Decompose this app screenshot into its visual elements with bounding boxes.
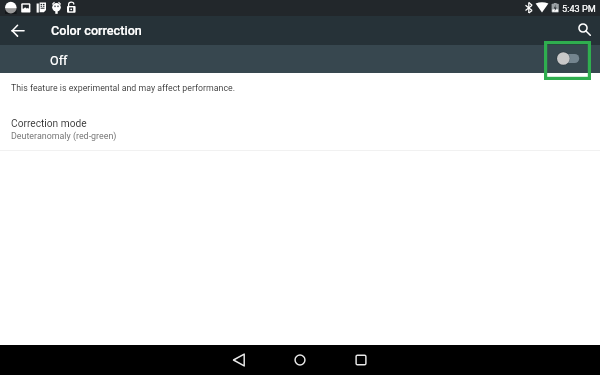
button[interactable]: Recent apps: [341, 345, 381, 375]
button[interactable]: Back: [219, 345, 259, 375]
staticText: Off: [50, 53, 68, 68]
button[interactable]: Color correction toggle, off: [544, 45, 591, 73]
staticText: Deuteranomaly (red-green): [11, 131, 117, 141]
staticText: This feature is experimental and may aff…: [11, 83, 236, 93]
staticText: Correction mode: [11, 118, 87, 130]
button[interactable]: Correction mode: [0, 118, 600, 149]
button[interactable]: Off: [0, 45, 600, 73]
staticText: 5:43 PM: [562, 3, 596, 14]
button[interactable]: Navigate up: [3, 16, 33, 45]
button[interactable]: Home: [280, 345, 320, 375]
button[interactable]: Search: [571, 14, 597, 43]
staticText: Color correction: [51, 23, 142, 38]
